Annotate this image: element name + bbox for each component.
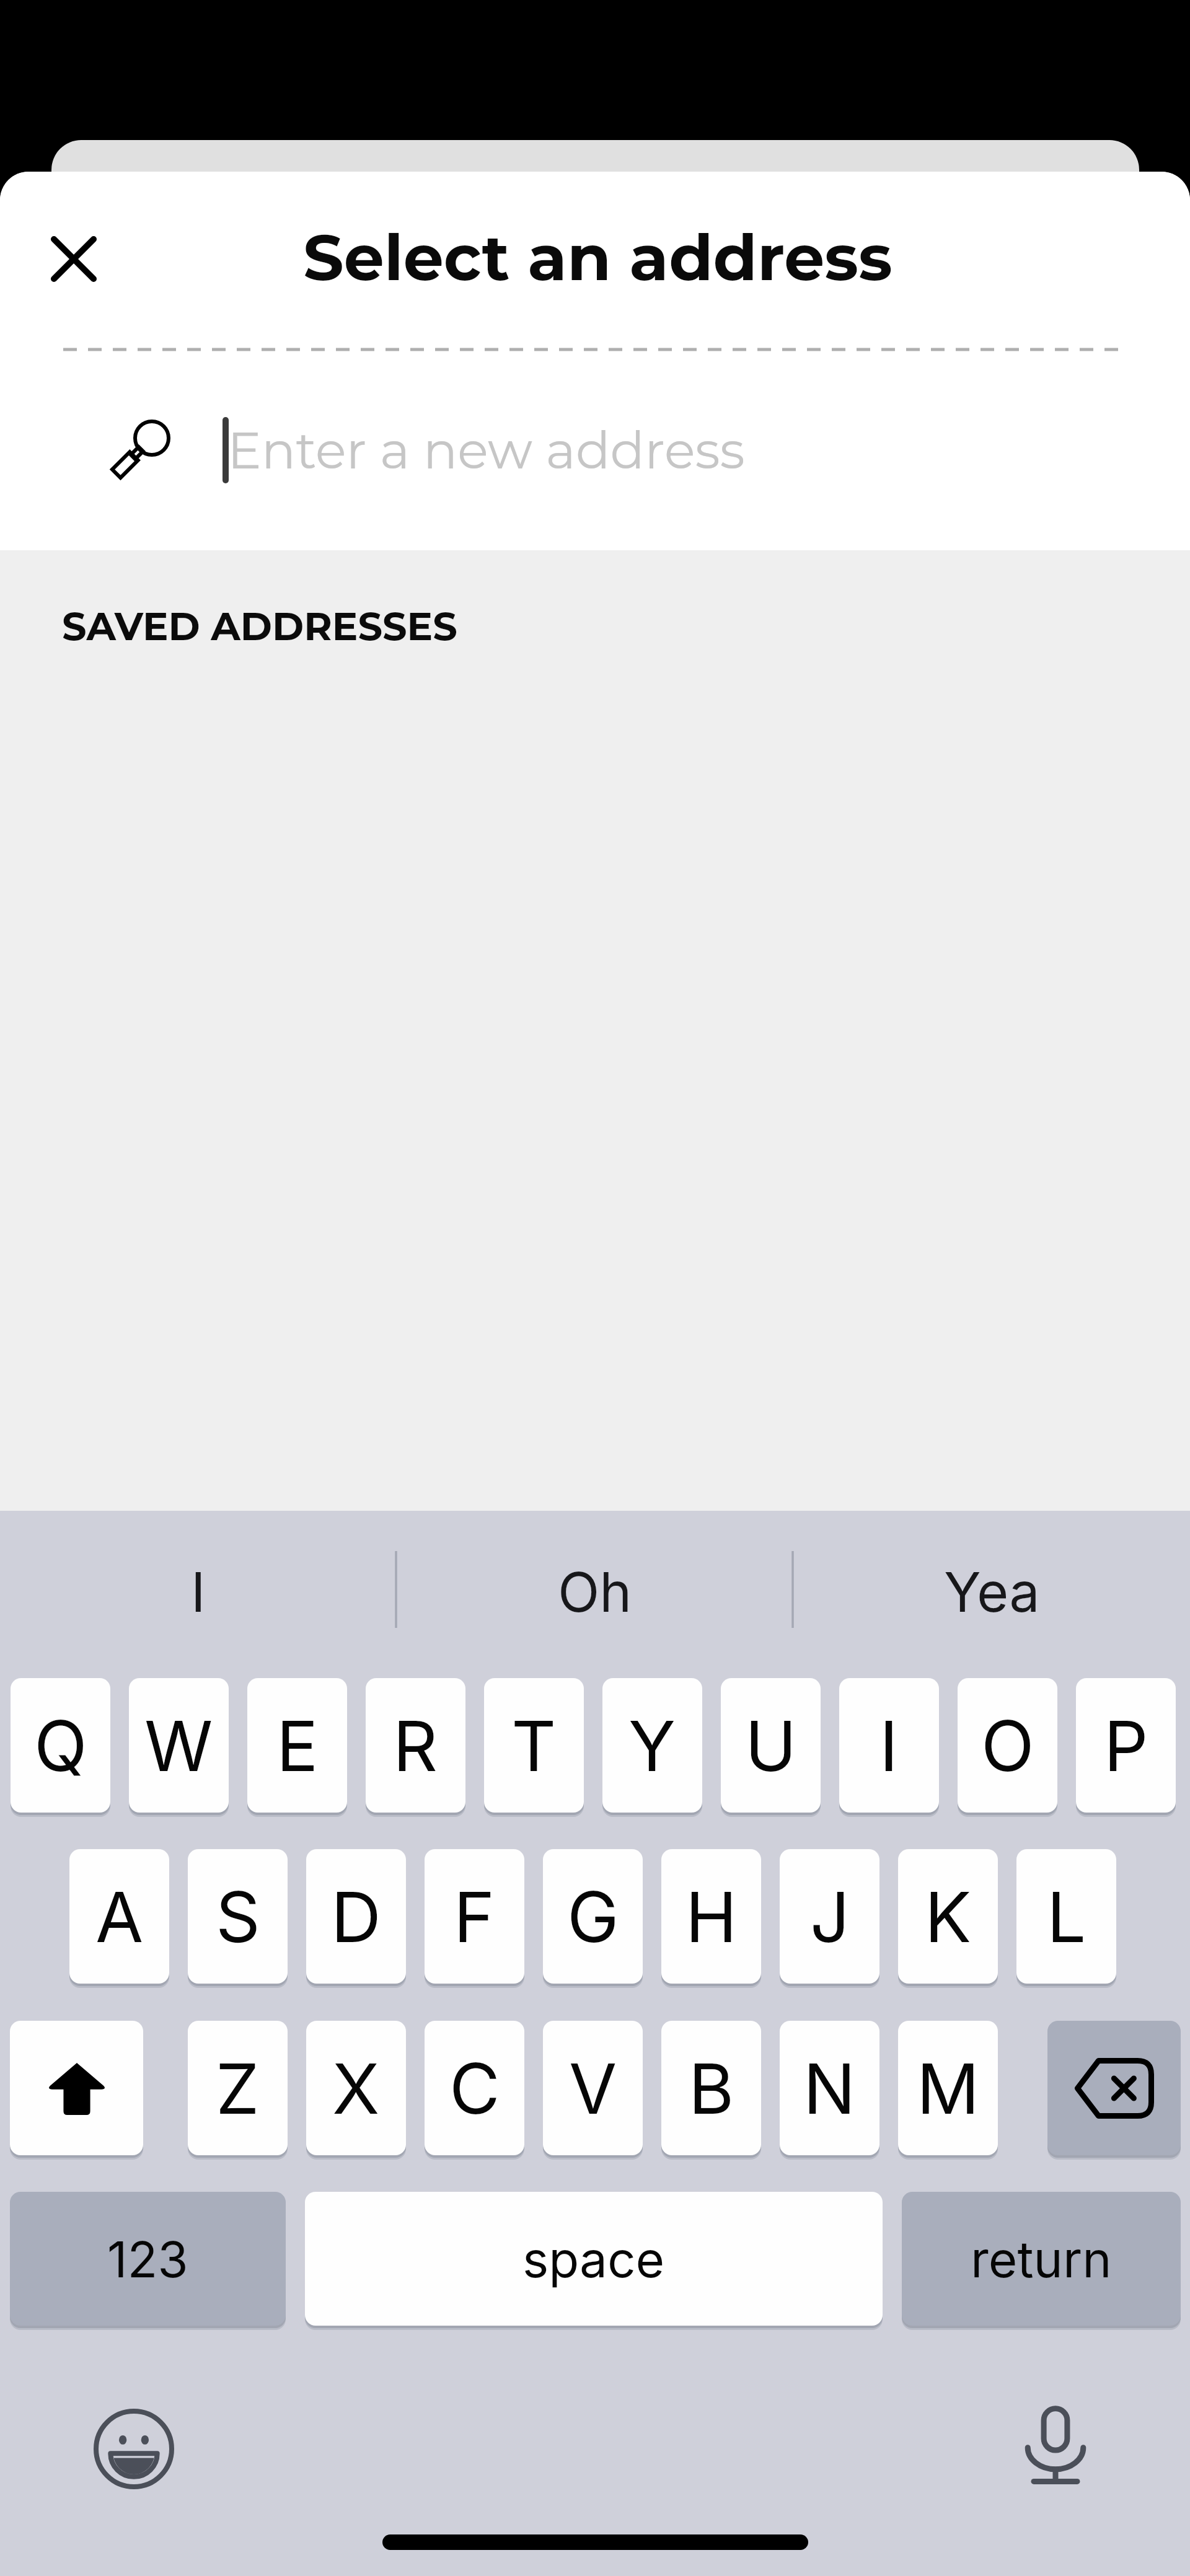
- staticText: V: [569, 2046, 617, 2130]
- button[interactable]: return: [902, 2192, 1181, 2331]
- staticText: Z: [216, 2046, 260, 2130]
- staticText: O: [981, 1703, 1034, 1788]
- button[interactable]: Q: [11, 1678, 110, 1818]
- button[interactable]: M: [898, 2021, 998, 2160]
- button[interactable]: C: [425, 2021, 524, 2160]
- staticText: B: [689, 2046, 734, 2130]
- staticText: S: [216, 1875, 260, 1959]
- staticText: Q: [34, 1703, 87, 1788]
- staticText: W: [144, 1703, 213, 1788]
- staticText: Oh: [558, 1559, 632, 1625]
- button[interactable]: 123: [10, 2192, 286, 2331]
- button[interactable]: D: [306, 1849, 406, 1989]
- staticText: space: [522, 2229, 665, 2289]
- staticText: M: [917, 2046, 980, 2130]
- button[interactable]: Oh: [471, 1541, 719, 1643]
- button[interactable]: space: [305, 2192, 883, 2331]
- staticText: X: [332, 2046, 380, 2130]
- button[interactable]: U: [721, 1678, 821, 1818]
- staticText: G: [567, 1875, 619, 1959]
- staticText: E: [276, 1703, 319, 1788]
- staticText: T: [511, 1703, 557, 1788]
- button[interactable]: F: [425, 1849, 524, 1989]
- button[interactable]: Shift: [10, 2021, 143, 2160]
- button[interactable]: Delete: [1047, 2021, 1181, 2160]
- staticText: N: [803, 2046, 856, 2130]
- button[interactable]: Voice input: [1012, 2402, 1099, 2489]
- button[interactable]: N: [780, 2021, 879, 2160]
- staticText: Y: [628, 1703, 676, 1788]
- staticText: 123: [107, 2229, 188, 2289]
- staticText: U: [745, 1703, 797, 1788]
- button[interactable]: K: [898, 1849, 998, 1989]
- button[interactable]: Yea: [868, 1541, 1116, 1643]
- staticText: I: [879, 1703, 899, 1788]
- staticText: P: [1104, 1703, 1148, 1788]
- staticText: R: [393, 1703, 438, 1788]
- button[interactable]: Z: [188, 2021, 288, 2160]
- staticText: H: [685, 1875, 738, 1959]
- staticText: L: [1047, 1875, 1086, 1959]
- button[interactable]: O: [958, 1678, 1057, 1818]
- button[interactable]: P: [1076, 1678, 1176, 1818]
- button[interactable]: J: [780, 1849, 879, 1989]
- staticText: I: [191, 1559, 206, 1625]
- button[interactable]: Emoji keyboard: [90, 2406, 177, 2492]
- staticText: SAVED ADDRESSES: [62, 603, 457, 650]
- staticText: A: [95, 1875, 144, 1959]
- button[interactable]: R: [366, 1678, 465, 1818]
- button[interactable]: H: [661, 1849, 761, 1989]
- button[interactable]: V: [543, 2021, 643, 2160]
- button[interactable]: T: [484, 1678, 584, 1818]
- button[interactable]: G: [543, 1849, 643, 1989]
- staticText: Yea: [944, 1559, 1040, 1625]
- staticText: Enter a new address: [227, 420, 745, 481]
- button[interactable]: Close: [32, 217, 116, 301]
- staticText: J: [810, 1875, 850, 1959]
- button[interactable]: S: [188, 1849, 288, 1989]
- button[interactable]: L: [1016, 1849, 1116, 1989]
- button[interactable]: Y: [602, 1678, 702, 1818]
- staticText: return: [971, 2229, 1112, 2289]
- button[interactable]: X: [306, 2021, 406, 2160]
- other: Search: [112, 416, 176, 480]
- button[interactable]: A: [69, 1849, 169, 1989]
- button[interactable]: I: [839, 1678, 939, 1818]
- button[interactable]: E: [247, 1678, 347, 1818]
- button[interactable]: W: [129, 1678, 229, 1818]
- staticText: F: [454, 1875, 495, 1959]
- button[interactable]: B: [661, 2021, 761, 2160]
- button[interactable]: I: [74, 1541, 322, 1643]
- staticText: D: [331, 1875, 381, 1959]
- staticText: Select an address: [303, 218, 892, 296]
- staticText: K: [925, 1875, 972, 1959]
- staticText: C: [449, 2046, 500, 2130]
